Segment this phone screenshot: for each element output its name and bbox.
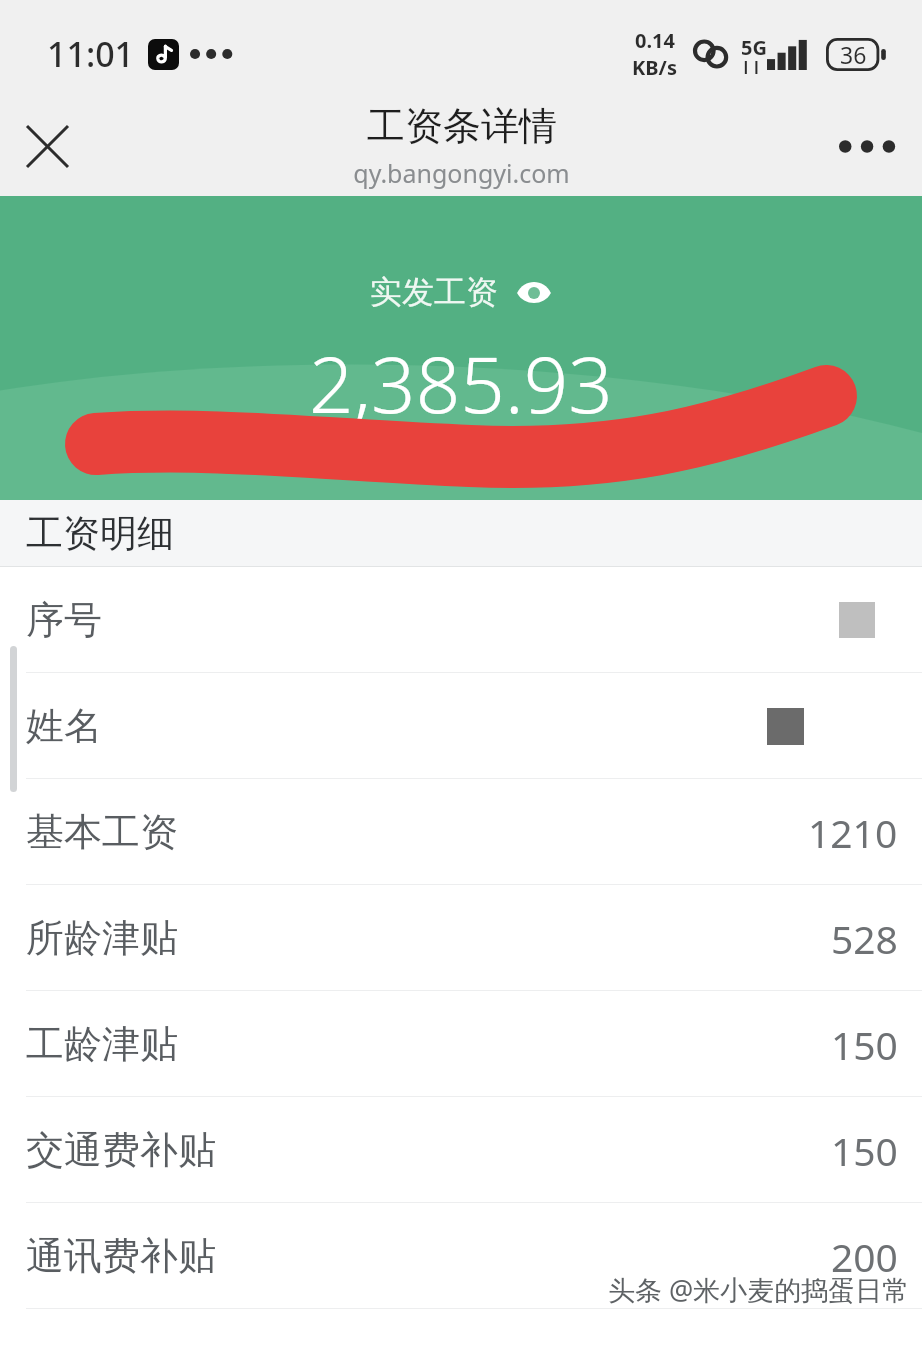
staticText: 通讯费补贴 (26, 1232, 216, 1280)
button[interactable]: 通讯费补贴 (0, 1203, 922, 1309)
button[interactable]: More options (828, 108, 904, 184)
other: Toggle amount visibility (516, 274, 552, 310)
staticText: 工资条详情 (367, 102, 557, 150)
staticText: 序号 (26, 596, 102, 644)
staticText: 姓名 (26, 702, 102, 750)
staticText: 2,385.93 (309, 330, 613, 436)
button[interactable]: 所龄津贴 (0, 885, 922, 991)
button[interactable]: Close (9, 108, 85, 184)
staticText: 所龄津贴 (26, 914, 178, 962)
staticText: 528 (831, 912, 898, 965)
staticText: 150 (831, 1124, 898, 1177)
staticText: 200 (831, 1230, 898, 1283)
staticText: 11:01 (47, 31, 135, 77)
staticText: 0.14 (635, 27, 675, 54)
staticText: 5G (741, 34, 767, 61)
button[interactable]: 序号 (0, 567, 922, 673)
button[interactable]: 工龄津贴 (0, 991, 922, 1097)
staticText: 基本工资 (26, 808, 178, 856)
button[interactable]: 姓名 (0, 673, 922, 779)
button[interactable]: 实发工资 (364, 270, 558, 314)
staticText: 实发工资 (370, 272, 498, 312)
staticText: 36 (840, 39, 867, 70)
staticText: qy.bangongyi.com (353, 156, 570, 190)
staticText: 工龄津贴 (26, 1020, 178, 1068)
staticText: 150 (831, 1018, 898, 1071)
button[interactable]: 交通费补贴 (0, 1097, 922, 1203)
staticText: 1210 (808, 806, 898, 859)
staticText: 工资明细 (26, 510, 174, 557)
staticText: 交通费补贴 (26, 1126, 216, 1174)
staticText: 头条 @米小麦的捣蛋日常 (608, 1271, 910, 1308)
button[interactable]: 基本工资 (0, 779, 922, 885)
staticText: KB/s (632, 54, 677, 81)
